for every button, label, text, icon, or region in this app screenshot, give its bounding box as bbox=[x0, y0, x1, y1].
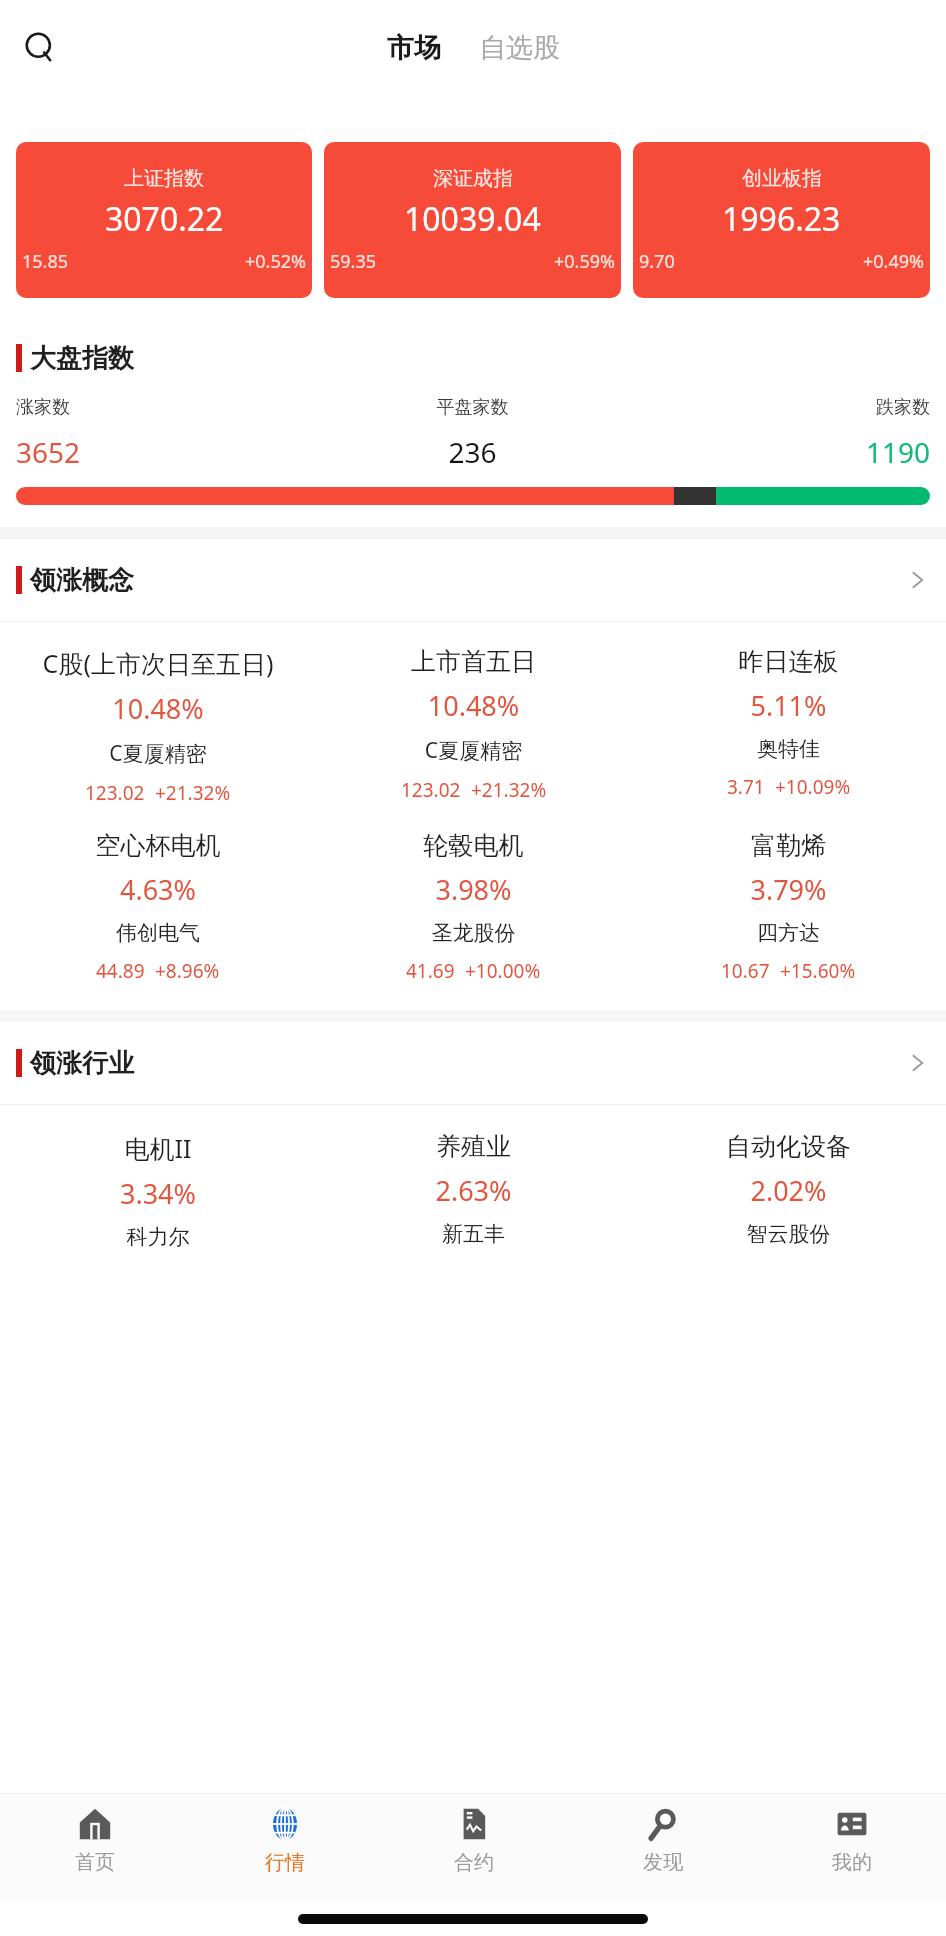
button[interactable]: 自动化设备 bbox=[631, 1131, 946, 1247]
staticText: 养殖业 bbox=[324, 1131, 623, 1162]
staticText: 领涨概念 bbox=[30, 564, 134, 597]
staticText: 3.34% bbox=[8, 1175, 308, 1212]
button[interactable]: 我的 bbox=[757, 1794, 946, 1902]
staticText: 123.02 bbox=[401, 777, 461, 803]
staticText: 伟创电气 bbox=[8, 920, 308, 946]
button[interactable]: 空心杯电机 bbox=[0, 830, 316, 984]
staticText: 2.02% bbox=[639, 1172, 938, 1209]
staticText: +0.49% bbox=[863, 249, 924, 274]
staticText: 236 bbox=[320, 433, 625, 471]
staticText: 123.02 bbox=[85, 780, 145, 806]
button[interactable]: 养殖业 bbox=[316, 1131, 631, 1247]
staticText: 平盘家数 bbox=[320, 396, 625, 419]
staticText: 5.11% bbox=[639, 687, 938, 724]
staticText: 新五丰 bbox=[324, 1221, 623, 1247]
button[interactable]: 创业板指 bbox=[633, 142, 930, 298]
staticText: 合约 bbox=[454, 1850, 494, 1875]
button[interactable]: 自选股 bbox=[473, 31, 566, 65]
staticText: 3652 bbox=[16, 433, 320, 471]
button[interactable]: Search bbox=[14, 22, 66, 74]
staticText: 3.98% bbox=[324, 871, 623, 908]
staticText: 59.35 bbox=[330, 249, 377, 274]
staticText: 深证成指 bbox=[433, 166, 513, 191]
button[interactable]: 上市首五日 bbox=[316, 646, 631, 803]
staticText: 自动化设备 bbox=[639, 1131, 938, 1162]
staticText: 上证指数 bbox=[124, 166, 204, 191]
button[interactable]: 深证成指 bbox=[324, 142, 621, 298]
staticText: 1996.23 bbox=[722, 197, 841, 241]
staticText: +10.09% bbox=[775, 774, 851, 800]
staticText: 昨日连板 bbox=[639, 646, 938, 677]
staticText: 大盘指数 bbox=[30, 342, 134, 375]
staticText: 44.89 bbox=[96, 958, 145, 984]
staticText: 10.67 bbox=[721, 958, 770, 984]
staticText: +21.32% bbox=[155, 780, 231, 806]
staticText: 电机II bbox=[8, 1131, 308, 1165]
staticText: 我的 bbox=[832, 1850, 872, 1875]
button[interactable]: C股(上市次日至五日) bbox=[0, 646, 316, 806]
staticText: 领涨行业 bbox=[30, 1047, 134, 1080]
button[interactable]: 富勒烯 bbox=[631, 830, 946, 984]
staticText: 空心杯电机 bbox=[8, 830, 308, 861]
button[interactable]: 昨日连板 bbox=[631, 646, 946, 800]
staticText: 4.63% bbox=[8, 871, 308, 908]
button[interactable]: 市场 bbox=[381, 31, 447, 65]
button[interactable]: 轮毂电机 bbox=[316, 830, 631, 984]
staticText: 3070.22 bbox=[105, 197, 224, 241]
staticText: 41.69 bbox=[406, 958, 455, 984]
button[interactable]: 合约 bbox=[379, 1794, 568, 1902]
button[interactable]: 领涨概念 bbox=[0, 539, 946, 621]
staticText: 创业板指 bbox=[742, 166, 822, 191]
staticText: 1190 bbox=[625, 433, 930, 471]
staticText: 四方达 bbox=[639, 920, 938, 946]
button[interactable]: 电机II bbox=[0, 1131, 316, 1250]
staticText: 科力尔 bbox=[8, 1224, 308, 1250]
staticText: 3.71 bbox=[727, 774, 765, 800]
staticText: +10.00% bbox=[465, 958, 541, 984]
staticText: 9.70 bbox=[639, 249, 675, 274]
staticText: 轮毂电机 bbox=[324, 830, 623, 861]
button[interactable]: 首页 bbox=[0, 1794, 190, 1902]
staticText: 自选股 bbox=[479, 31, 560, 65]
staticText: 2.63% bbox=[324, 1172, 623, 1209]
staticText: 富勒烯 bbox=[639, 830, 938, 861]
staticText: C夏厦精密 bbox=[8, 739, 308, 768]
staticText: +0.59% bbox=[554, 249, 615, 274]
button[interactable]: 发现 bbox=[568, 1794, 757, 1902]
staticText: +0.52% bbox=[245, 249, 306, 274]
staticText: 10.48% bbox=[324, 687, 623, 724]
button[interactable]: 领涨行业 bbox=[0, 1022, 946, 1104]
button[interactable]: 行情 bbox=[190, 1794, 379, 1902]
staticText: 圣龙股份 bbox=[324, 920, 623, 946]
staticText: 智云股份 bbox=[639, 1221, 938, 1247]
staticText: 行情 bbox=[265, 1850, 305, 1875]
staticText: 10.48% bbox=[8, 690, 308, 727]
staticText: C夏厦精密 bbox=[324, 736, 623, 765]
staticText: 发现 bbox=[643, 1850, 683, 1875]
staticText: 10039.04 bbox=[404, 197, 541, 241]
button[interactable]: 上证指数 bbox=[16, 142, 312, 298]
staticText: 15.85 bbox=[22, 249, 69, 274]
staticText: 3.79% bbox=[639, 871, 938, 908]
staticText: 首页 bbox=[75, 1850, 115, 1875]
staticText: 奥特佳 bbox=[639, 736, 938, 762]
staticText: 涨家数 bbox=[16, 396, 320, 419]
staticText: +21.32% bbox=[471, 777, 547, 803]
staticText: C股(上市次日至五日) bbox=[8, 646, 308, 680]
staticText: +8.96% bbox=[155, 958, 220, 984]
staticText: 跌家数 bbox=[625, 396, 930, 419]
staticText: +15.60% bbox=[780, 958, 856, 984]
staticText: 上市首五日 bbox=[324, 646, 623, 677]
staticText: 市场 bbox=[387, 31, 441, 65]
